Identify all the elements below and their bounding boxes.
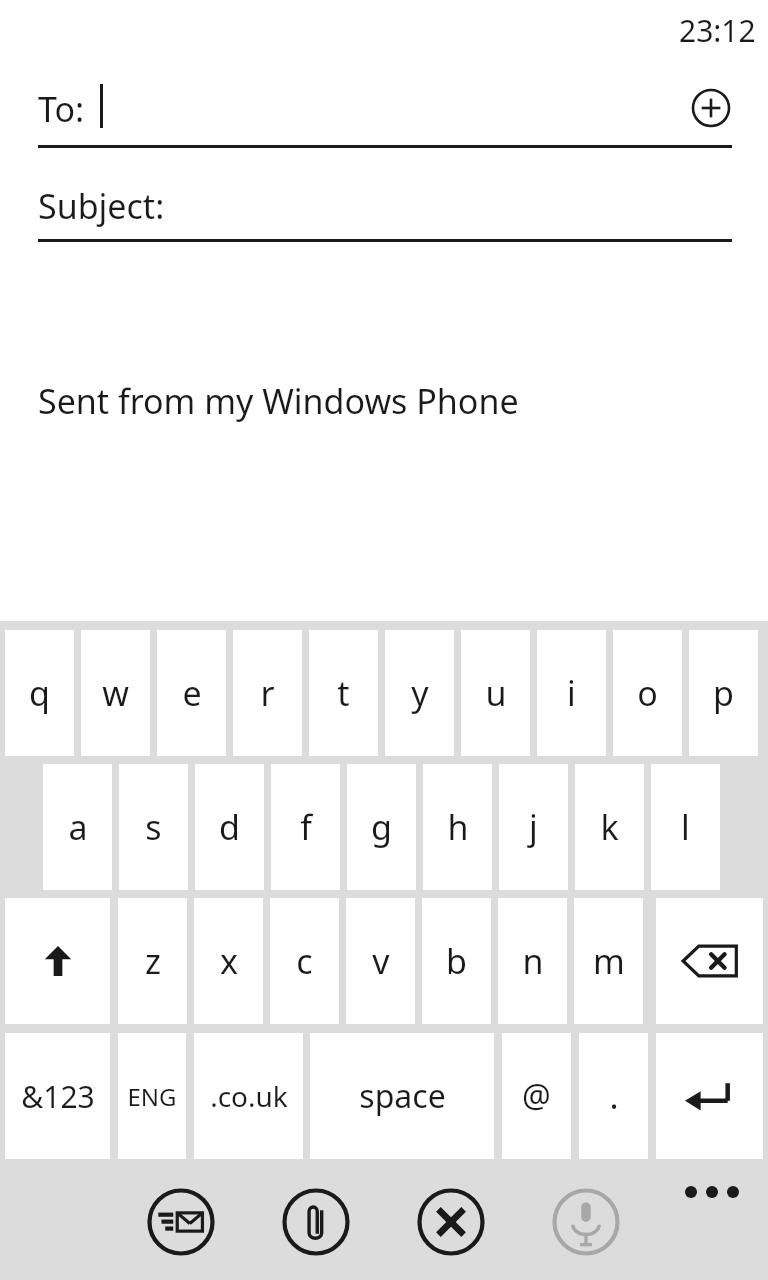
button[interactable]: t	[309, 630, 378, 756]
button[interactable]: v	[346, 898, 415, 1024]
button[interactable]: i	[537, 630, 606, 756]
button[interactable]: g	[347, 764, 416, 890]
staticText: k	[600, 804, 619, 850]
staticText: space	[359, 1074, 446, 1118]
staticText: i	[567, 670, 576, 716]
button[interactable]: j	[499, 764, 568, 890]
staticText: Sent from my Windows Phone	[38, 378, 519, 424]
button[interactable]: ENG	[118, 1033, 186, 1159]
button[interactable]: @	[502, 1033, 571, 1159]
button[interactable]: Add recipient	[683, 80, 739, 136]
button[interactable]: To:	[0, 74, 768, 148]
staticText: 23:12	[679, 10, 756, 51]
button[interactable]: Subject:	[0, 170, 768, 242]
staticText: f	[300, 804, 312, 850]
button[interactable]: &123	[5, 1033, 110, 1159]
button[interactable]: Shift	[5, 898, 110, 1024]
button[interactable]: h	[423, 764, 492, 890]
staticText: @	[522, 1074, 551, 1118]
button[interactable]: k	[575, 764, 644, 890]
staticText: h	[447, 804, 469, 850]
button[interactable]: b	[422, 898, 491, 1024]
staticText: .	[609, 1073, 619, 1119]
button[interactable]: s	[119, 764, 188, 890]
staticText: Subject:	[38, 183, 165, 229]
button[interactable]: f	[271, 764, 340, 890]
staticText: .co.uk	[210, 1077, 288, 1115]
button[interactable]: l	[651, 764, 720, 890]
button[interactable]: Backspace	[656, 898, 763, 1024]
staticText: c	[296, 938, 313, 984]
button[interactable]: More options	[666, 1164, 758, 1220]
staticText: r	[260, 670, 275, 716]
button[interactable]: p	[689, 630, 758, 756]
button[interactable]: u	[461, 630, 530, 756]
staticText: o	[637, 670, 658, 716]
button[interactable]: d	[195, 764, 264, 890]
staticText: To:	[38, 86, 85, 132]
button[interactable]: e	[157, 630, 226, 756]
staticText: z	[145, 938, 161, 984]
staticText: x	[220, 938, 238, 984]
staticText: b	[446, 938, 467, 984]
staticText: s	[145, 804, 162, 850]
button[interactable]: space	[310, 1033, 494, 1159]
staticText: l	[681, 804, 690, 850]
staticText: g	[371, 804, 392, 850]
staticText: v	[372, 938, 390, 984]
button[interactable]: Close	[417, 1188, 485, 1256]
button[interactable]: z	[118, 898, 187, 1024]
staticText: q	[29, 670, 50, 716]
button[interactable]: Attach	[282, 1188, 350, 1256]
button[interactable]: .co.uk	[194, 1033, 303, 1159]
button[interactable]: w	[81, 630, 150, 756]
staticText: j	[529, 804, 538, 850]
staticText: a	[68, 804, 88, 850]
staticText: m	[593, 938, 625, 984]
staticText: p	[713, 670, 734, 716]
button[interactable]: n	[498, 898, 567, 1024]
button[interactable]: Sent from my Windows Phone	[0, 260, 768, 610]
staticText: y	[411, 670, 429, 716]
button[interactable]: m	[574, 898, 643, 1024]
staticText: &123	[21, 1076, 95, 1117]
button[interactable]: Voice input	[552, 1188, 620, 1256]
staticText: ENG	[127, 1080, 177, 1113]
staticText: d	[219, 804, 240, 850]
button[interactable]: c	[270, 898, 339, 1024]
button[interactable]: o	[613, 630, 682, 756]
button[interactable]: x	[194, 898, 263, 1024]
staticText: u	[485, 670, 507, 716]
button[interactable]: r	[233, 630, 302, 756]
staticText: t	[337, 670, 350, 716]
button[interactable]: .	[579, 1033, 648, 1159]
staticText: w	[102, 670, 129, 716]
staticText: n	[522, 938, 544, 984]
button[interactable]: q	[5, 630, 74, 756]
staticText: e	[182, 670, 202, 716]
button[interactable]: y	[385, 630, 454, 756]
button[interactable]: Enter	[656, 1033, 763, 1159]
button[interactable]: Send	[147, 1188, 215, 1256]
button[interactable]: a	[43, 764, 112, 890]
